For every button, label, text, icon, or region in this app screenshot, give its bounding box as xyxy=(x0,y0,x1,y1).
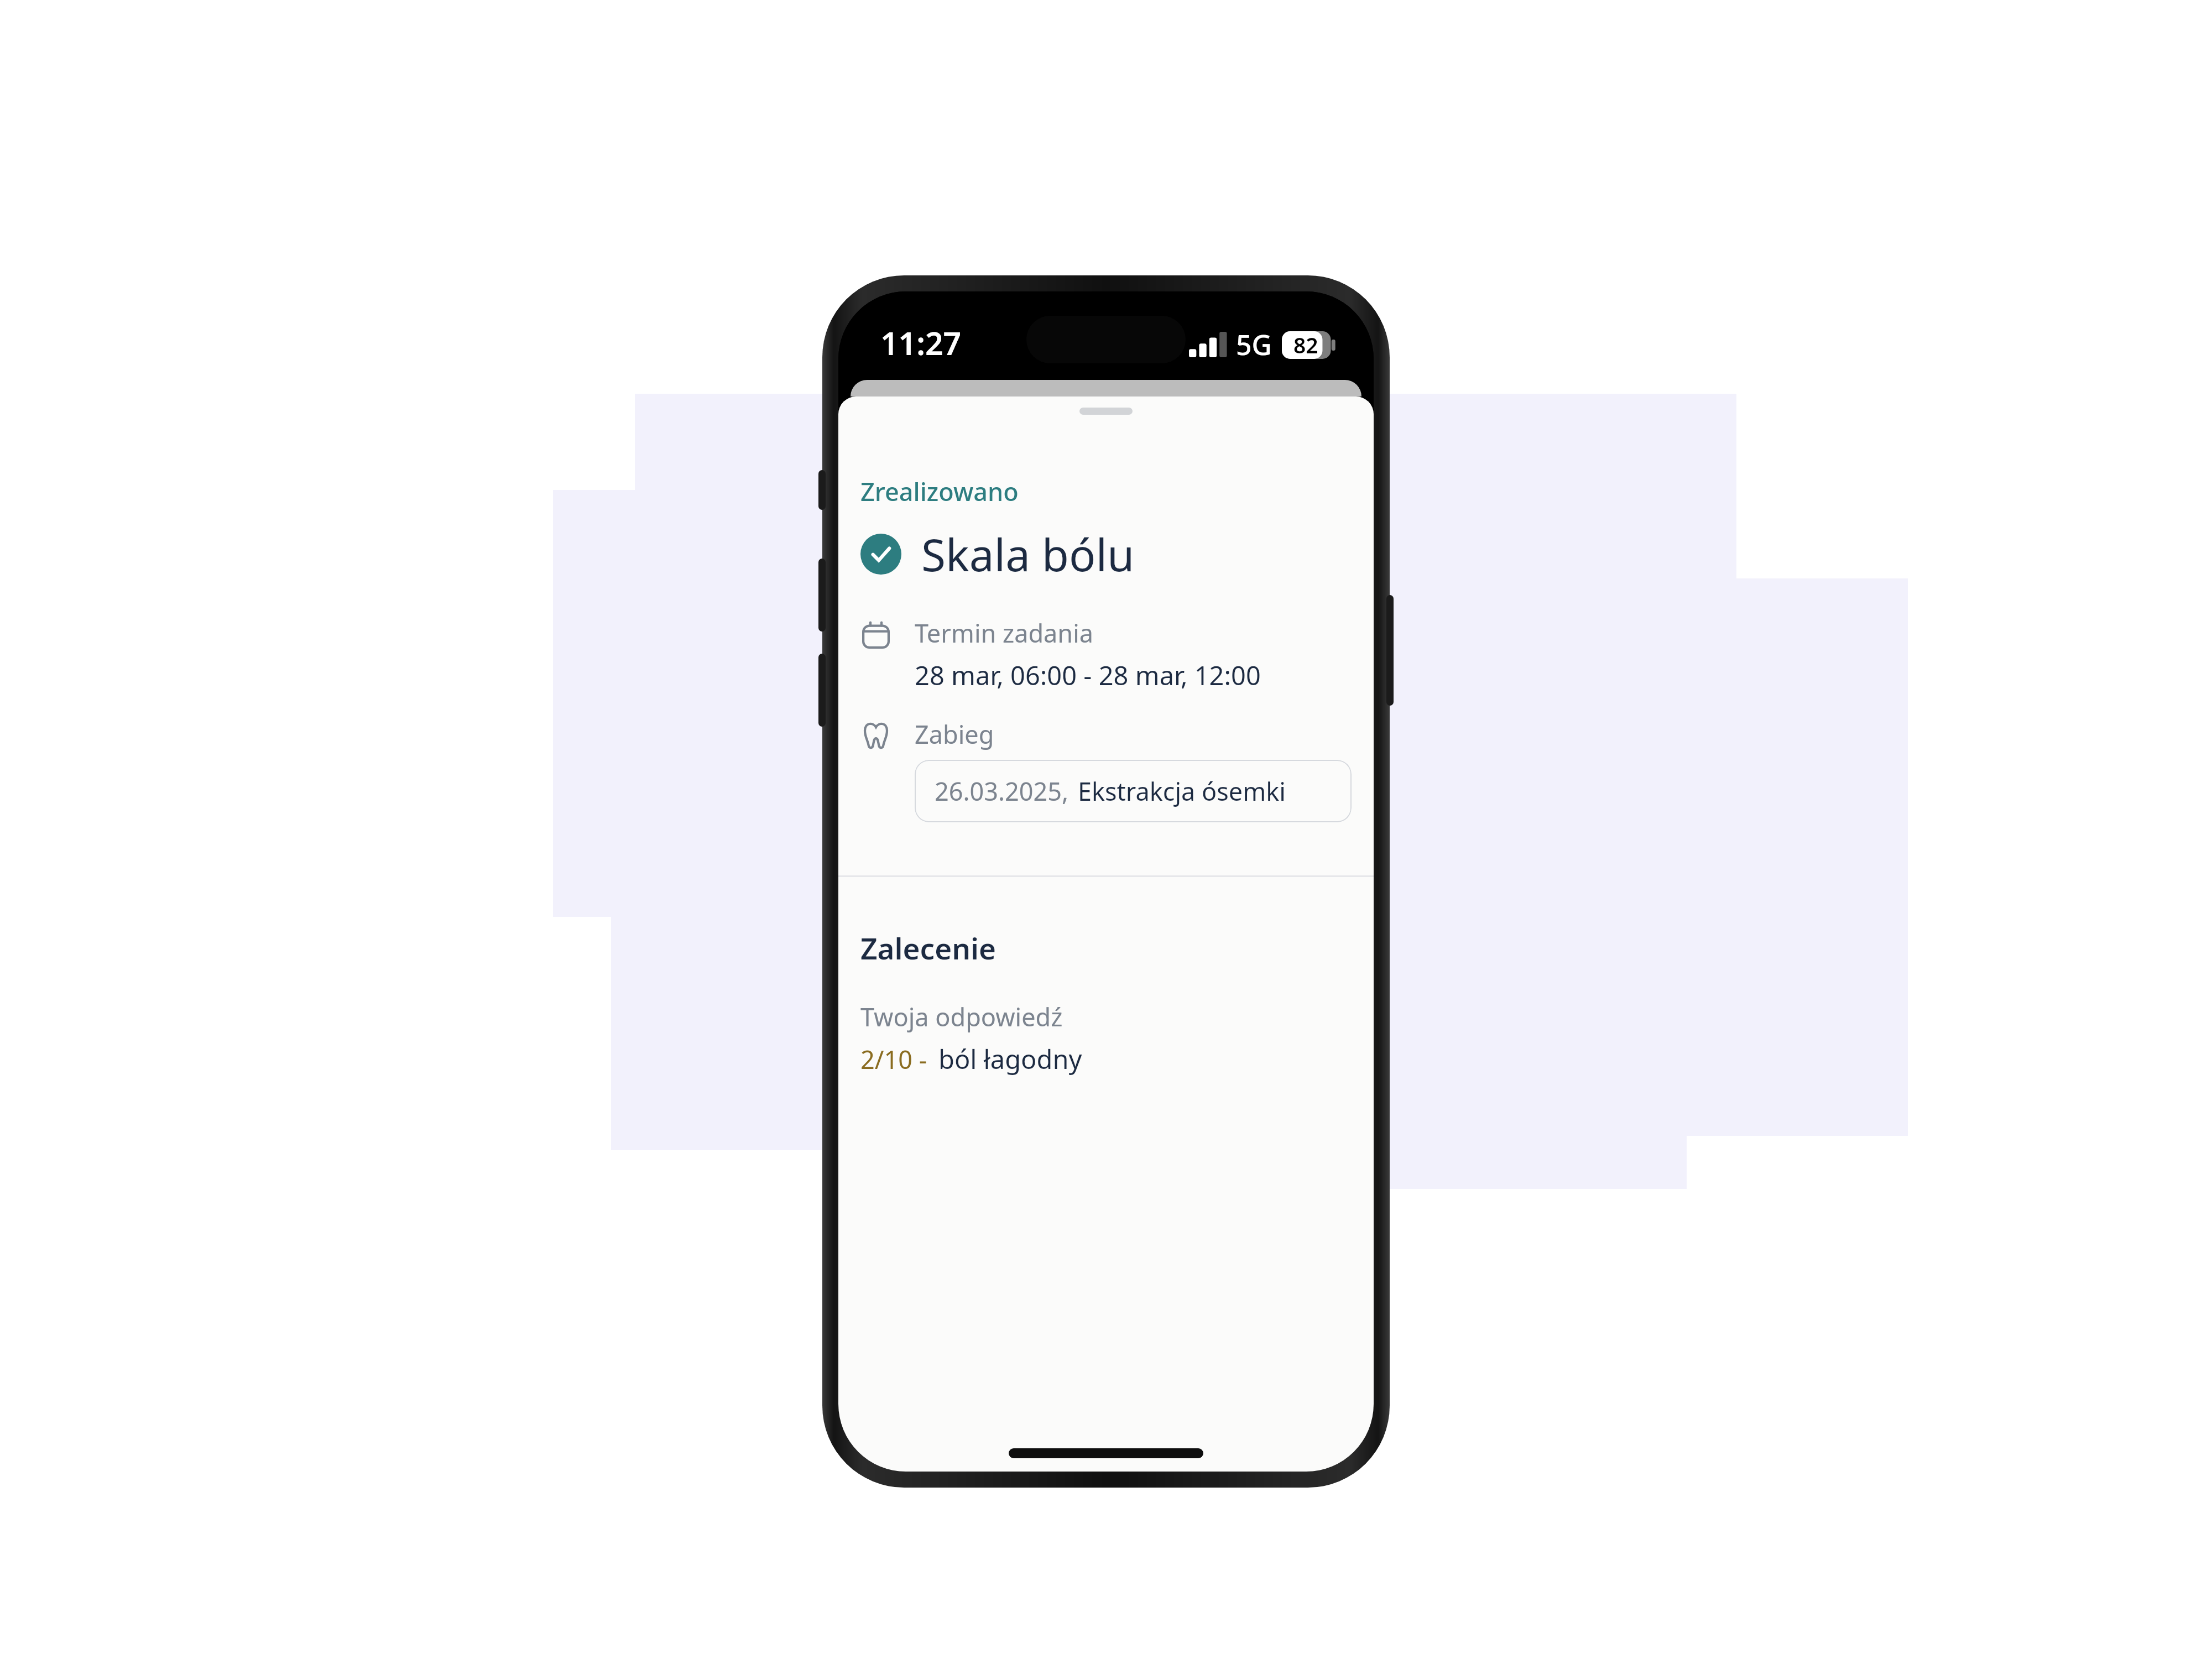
other: Treatment xyxy=(862,721,890,749)
staticText: Zrealizowano xyxy=(860,474,1019,508)
staticText: Termin zadania xyxy=(915,616,1094,650)
button[interactable]: 26.03.2025, xyxy=(915,760,1352,822)
staticText: 2/10 - xyxy=(860,1042,927,1076)
other: Calendar xyxy=(862,621,890,649)
staticText: Skala bólu xyxy=(921,524,1135,584)
staticText: 28 mar, 06:00 - 28 mar, 12:00 xyxy=(915,658,1261,693)
staticText: Zabieg xyxy=(915,717,994,751)
staticText: 5G xyxy=(1236,326,1272,363)
staticText: Ekstrakcja ósemki xyxy=(1078,774,1286,808)
staticText: 82 xyxy=(1293,330,1318,359)
staticText: Twoja odpowiedź xyxy=(860,1000,1063,1034)
staticText: 26.03.2025, xyxy=(935,774,1069,808)
staticText: Zalecenie xyxy=(860,928,996,968)
staticText: ból łagodny xyxy=(938,1041,1082,1077)
staticText: 11:27 xyxy=(880,321,962,364)
